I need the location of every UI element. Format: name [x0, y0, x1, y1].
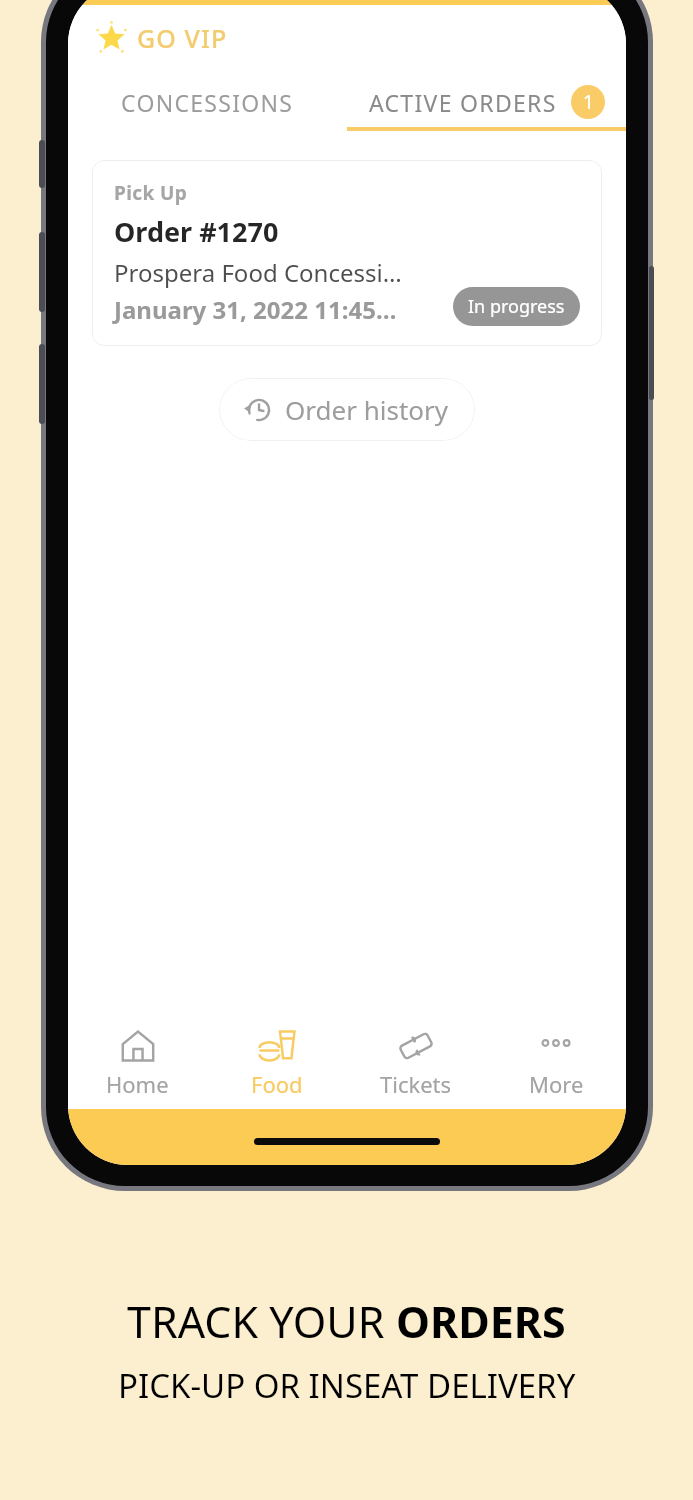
staticText: 1 [583, 89, 594, 115]
staticText: GO VIP [137, 21, 228, 55]
staticText: CONCESSIONS [121, 87, 294, 118]
staticText: Home [106, 1069, 169, 1099]
button[interactable]: Pick Up [92, 160, 602, 346]
staticText: Pick Up [114, 180, 188, 206]
staticText: Prospera Food Concessi… [114, 256, 402, 289]
staticText: Food [251, 1069, 303, 1099]
button[interactable]: Home [68, 1013, 207, 1109]
button[interactable]: GO VIP [92, 17, 232, 59]
staticText: TRACK YOUR [127, 1292, 396, 1351]
button[interactable]: More [486, 1013, 626, 1109]
staticText: ACTIVE ORDERS [369, 87, 557, 118]
staticText: More [529, 1069, 584, 1099]
staticText: ORDERS [396, 1292, 566, 1351]
staticText: PICK-UP OR INSEAT DELIVERY [118, 1363, 576, 1408]
button[interactable]: Order history [219, 378, 475, 441]
button[interactable]: Tickets [346, 1013, 486, 1109]
button[interactable]: CONCESSIONS [68, 73, 347, 131]
staticText: Order #1270 [114, 213, 279, 250]
button[interactable]: ACTIVE ORDERS [347, 73, 626, 131]
staticText: January 31, 2022 11:45… [114, 293, 397, 326]
staticText: In progress [468, 294, 565, 319]
staticText: Order history [285, 392, 449, 427]
staticText: Tickets [380, 1069, 452, 1099]
button[interactable]: Food [207, 1013, 346, 1109]
